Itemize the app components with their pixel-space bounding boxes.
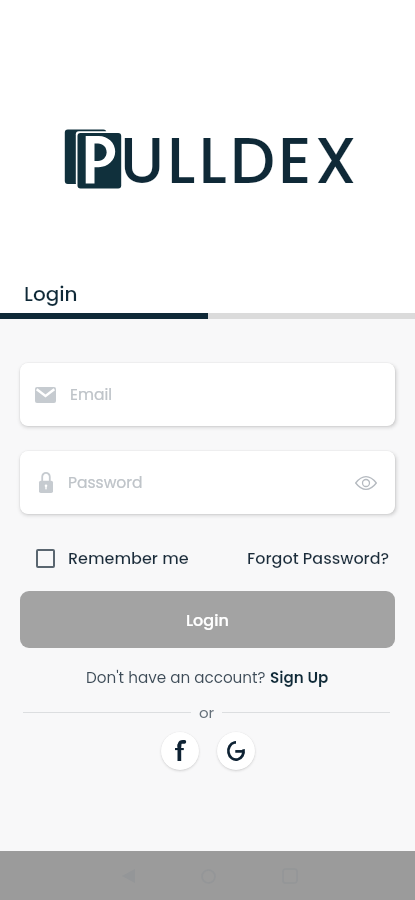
staticText: Remember me xyxy=(68,547,189,569)
button[interactable]: Password xyxy=(20,451,395,514)
button[interactable]: Sign in with Facebook xyxy=(161,732,199,770)
staticText: Login xyxy=(186,609,229,631)
button[interactable]: Email xyxy=(20,363,395,426)
staticText: Email xyxy=(70,384,113,406)
button[interactable]: Sign in with Google xyxy=(217,732,255,770)
button[interactable]: Login xyxy=(24,280,78,308)
button[interactable]: Login xyxy=(20,591,395,648)
staticText: Password xyxy=(68,472,143,494)
staticText: Don't have an account? xyxy=(86,667,270,688)
staticText: Sign Up xyxy=(270,667,329,688)
button[interactable]: Remember me xyxy=(36,547,189,569)
button[interactable]: Forgot Password? xyxy=(247,547,390,569)
button[interactable]: Sign Up xyxy=(270,667,329,688)
button[interactable]: Show password xyxy=(355,476,377,490)
staticText: ULLDEX xyxy=(120,116,360,206)
staticText: or xyxy=(199,702,215,723)
staticText: Forgot Password? xyxy=(247,547,390,569)
staticText: Login xyxy=(24,280,78,308)
